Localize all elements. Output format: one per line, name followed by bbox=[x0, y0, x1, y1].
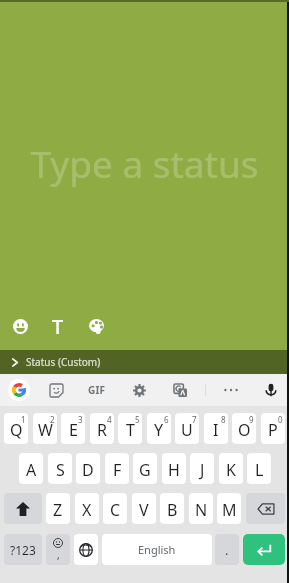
staticText: 5 bbox=[135, 414, 140, 425]
button[interactable]: Change language bbox=[74, 534, 98, 565]
staticText: B bbox=[167, 499, 178, 521]
staticText: R bbox=[97, 419, 107, 441]
staticText: G bbox=[139, 459, 151, 481]
button[interactable]: P bbox=[261, 413, 285, 444]
button[interactable]: Translate bbox=[167, 377, 193, 403]
button[interactable]: More options bbox=[218, 377, 244, 403]
staticText: O bbox=[238, 419, 251, 441]
staticText: X bbox=[82, 499, 92, 521]
button[interactable]: Z bbox=[46, 493, 70, 524]
staticText: , bbox=[57, 548, 60, 562]
button[interactable]: Y bbox=[147, 413, 171, 444]
staticText: . bbox=[225, 541, 229, 559]
button[interactable]: T bbox=[118, 413, 142, 444]
button[interactable]: . bbox=[215, 534, 239, 565]
staticText: C bbox=[110, 499, 121, 521]
staticText: Type a status bbox=[0, 138, 289, 188]
button[interactable]: H bbox=[162, 453, 186, 484]
staticText: N bbox=[195, 499, 208, 521]
button[interactable]: Shift bbox=[4, 493, 42, 524]
button[interactable]: Q bbox=[4, 413, 28, 444]
staticText: English bbox=[138, 542, 176, 557]
staticText: U bbox=[181, 419, 193, 441]
button[interactable]: English bbox=[102, 534, 212, 565]
button[interactable]: F bbox=[105, 453, 129, 484]
staticText: 4 bbox=[107, 414, 112, 425]
button[interactable]: ?123 bbox=[4, 534, 42, 565]
staticText: Z bbox=[53, 499, 63, 521]
staticText: 0 bbox=[278, 414, 283, 425]
staticText: 6 bbox=[164, 414, 169, 425]
button[interactable]: E bbox=[61, 413, 85, 444]
staticText: ?123 bbox=[10, 542, 36, 558]
button[interactable]: Backspace bbox=[246, 493, 285, 524]
staticText: 3 bbox=[78, 414, 83, 425]
button[interactable]: Emoji and comma bbox=[46, 534, 70, 565]
button[interactable]: GIF bbox=[84, 377, 110, 403]
button[interactable]: M bbox=[217, 493, 241, 524]
button[interactable]: J bbox=[190, 453, 214, 484]
staticText: J bbox=[200, 459, 205, 481]
button[interactable]: Voice input bbox=[258, 377, 284, 403]
staticText: W bbox=[38, 419, 53, 441]
button[interactable]: U bbox=[175, 413, 199, 444]
staticText: T bbox=[126, 419, 135, 441]
staticText: 1 bbox=[21, 414, 26, 425]
staticText: M bbox=[222, 499, 237, 521]
staticText: V bbox=[139, 499, 149, 521]
staticText: H bbox=[168, 459, 180, 481]
button[interactable]: C bbox=[103, 493, 127, 524]
staticText: GIF bbox=[88, 383, 106, 397]
staticText: S bbox=[56, 459, 65, 481]
button[interactable]: A bbox=[19, 453, 43, 484]
staticText: A bbox=[26, 459, 37, 481]
button[interactable]: W bbox=[33, 413, 57, 444]
staticText: 8 bbox=[221, 414, 226, 425]
staticText: E bbox=[69, 419, 78, 441]
button[interactable]: K bbox=[219, 453, 243, 484]
staticText: P bbox=[268, 419, 278, 441]
button[interactable]: Stickers bbox=[43, 377, 69, 403]
button[interactable]: L bbox=[247, 453, 271, 484]
staticText: Status (Custom) bbox=[26, 355, 101, 369]
button[interactable]: X bbox=[75, 493, 99, 524]
button[interactable]: Google search bbox=[8, 379, 30, 401]
staticText: L bbox=[255, 459, 264, 481]
button[interactable]: R bbox=[90, 413, 114, 444]
button[interactable]: Emoji bbox=[2, 308, 38, 344]
staticText: K bbox=[226, 459, 236, 481]
button[interactable]: Background colour bbox=[78, 308, 114, 344]
button[interactable]: Text style bbox=[40, 308, 76, 344]
staticText: 9 bbox=[249, 414, 254, 425]
button[interactable]: B bbox=[160, 493, 184, 524]
staticText: T bbox=[52, 313, 64, 340]
button[interactable]: V bbox=[132, 493, 156, 524]
staticText: Y bbox=[154, 419, 164, 441]
staticText: 2 bbox=[50, 414, 55, 425]
staticText: 7 bbox=[192, 414, 197, 425]
button[interactable]: I bbox=[204, 413, 228, 444]
button[interactable]: G bbox=[133, 453, 157, 484]
button[interactable]: O bbox=[232, 413, 256, 444]
button[interactable]: Settings bbox=[126, 377, 152, 403]
staticText: D bbox=[82, 459, 94, 481]
button[interactable]: D bbox=[76, 453, 100, 484]
button[interactable]: Enter bbox=[243, 534, 285, 565]
staticText: Q bbox=[10, 419, 23, 441]
staticText: F bbox=[113, 459, 122, 481]
button[interactable]: Status (Custom) bbox=[0, 350, 289, 374]
button[interactable]: N bbox=[189, 493, 213, 524]
staticText: I bbox=[213, 419, 219, 441]
button[interactable]: S bbox=[48, 453, 72, 484]
